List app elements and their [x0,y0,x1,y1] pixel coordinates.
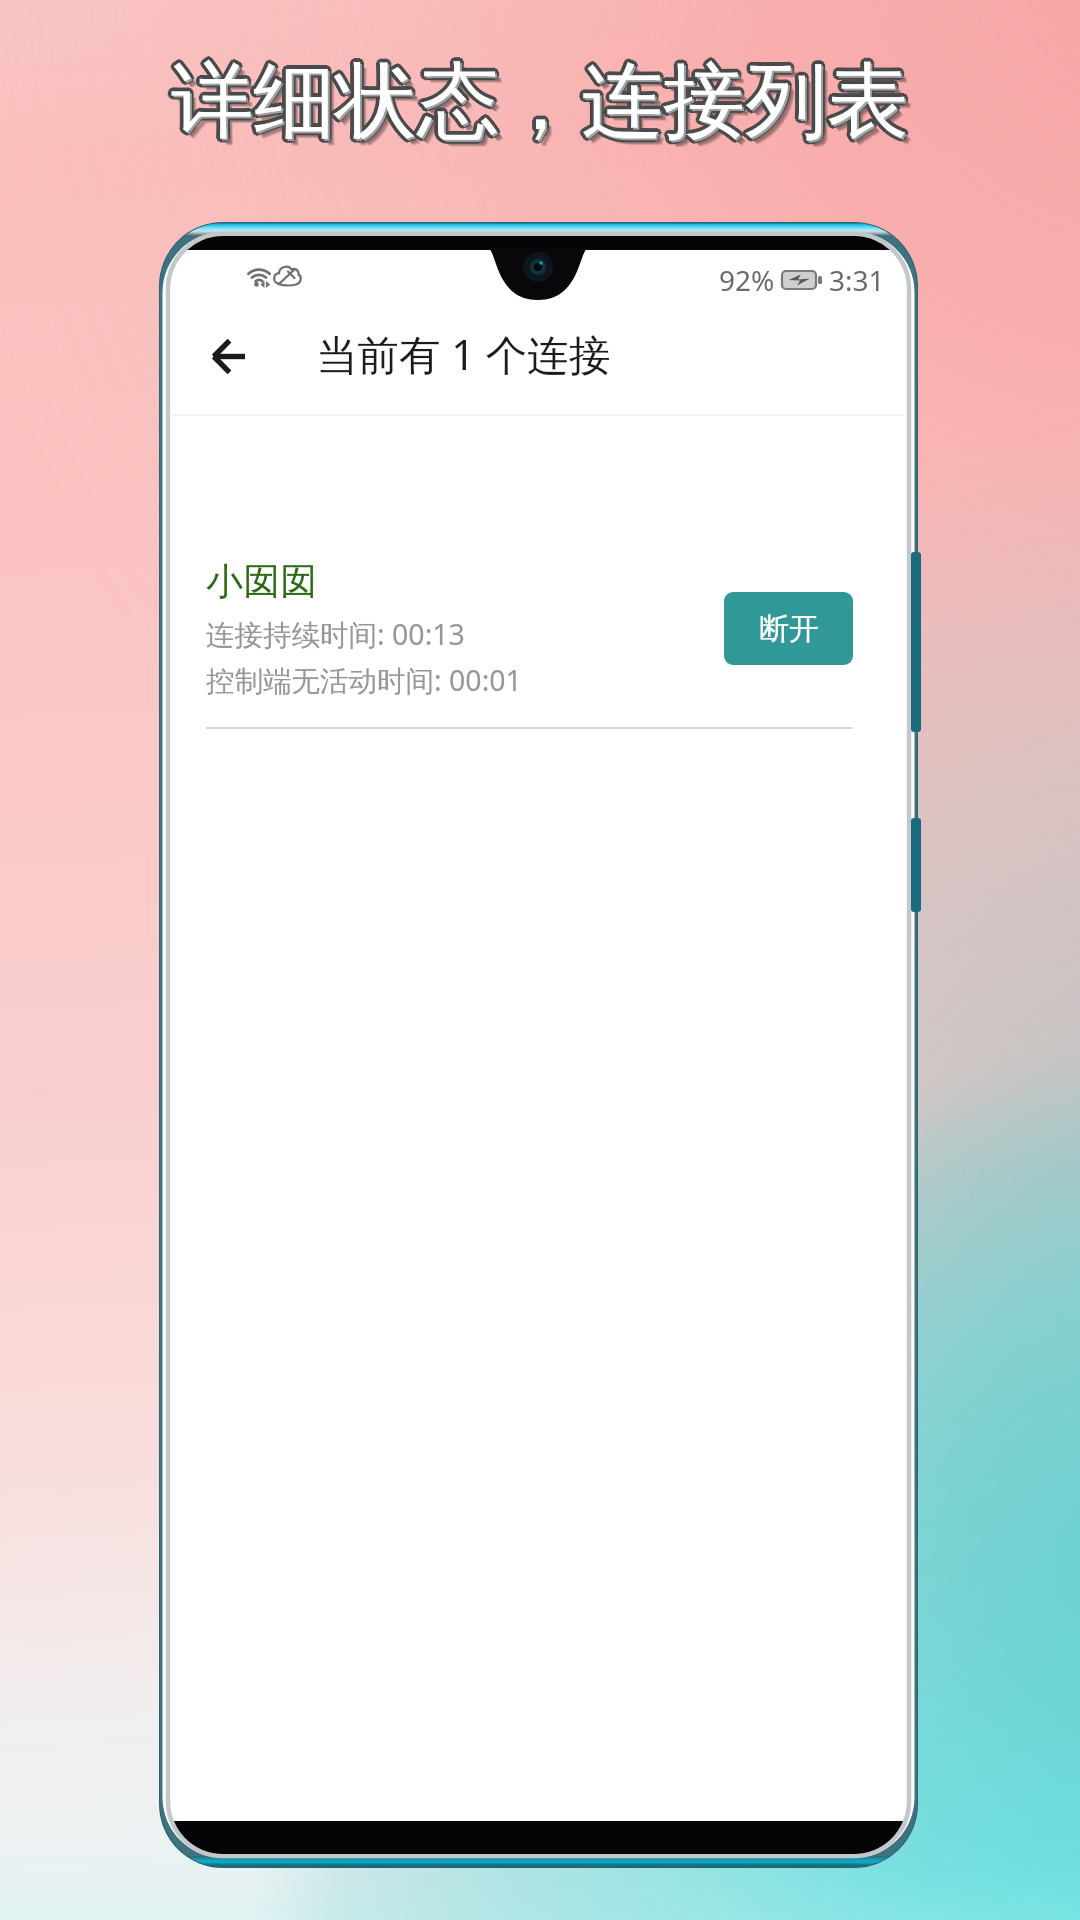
staticText: 详细状态，连接列表 [173,48,911,151]
staticText: 详细状态，连接列表 [174,51,912,154]
staticText: 详细状态，连接列表 [168,50,906,153]
staticText: 详细状态，连接列表 [174,49,912,152]
staticText: 详细状态，连接列表 [169,48,907,151]
staticText: 详细状态，连接列表 [171,50,909,153]
button[interactable]: 断开 [724,592,853,665]
staticText: 小囡囡 [206,558,317,605]
staticText: 控制端无活动时间: 00:01 [206,661,522,700]
staticText: 详细状态，连接列表 [174,52,912,155]
staticText: 详细状态，连接列表 [172,53,910,156]
staticText: 详细状态，连接列表 [172,47,910,150]
button[interactable]: 小囡囡 [173,558,903,728]
staticText: 详细状态，连接列表 [177,56,915,159]
staticText: 详细状态，连接列表 [171,53,909,156]
staticText: 详细状态，连接列表 [168,51,906,154]
staticText: 详细状态，连接列表 [169,47,907,150]
staticText: 详细状态，连接列表 [178,57,916,160]
staticText: 当前有 1 个连接 [316,326,611,383]
staticText: 详细状态，连接列表 [175,50,913,153]
staticText: 详细状态，连接列表 [173,52,911,155]
staticText: 详细状态，连接列表 [171,46,909,149]
staticText: 连接持续时间: 00:13 [206,615,465,654]
staticText: 92% [719,261,775,299]
staticText: 详细状态，连接列表 [168,52,906,155]
staticText: 详细状态，连接列表 [173,52,911,155]
staticText: 详细状态，连接列表 [169,52,907,155]
staticText: 3:31 [829,261,885,299]
staticText: 详细状态，连接列表 [173,53,911,156]
staticText: 详细状态，连接列表 [170,47,908,150]
staticText: 详细状态，连接列表 [167,50,905,153]
staticText: 详细状态，连接列表 [174,53,912,156]
staticText: 详细状态，连接列表 [176,55,914,158]
staticText: 详细状态，连接列表 [173,52,911,155]
staticText: 详细状态，连接列表 [174,50,912,153]
button[interactable]: Back [198,325,258,385]
staticText: 详细状态，连接列表 [173,52,911,155]
staticText: 详细状态，连接列表 [174,48,912,151]
staticText: 断开 [759,610,819,648]
staticText: 详细状态，连接列表 [168,48,906,151]
staticText: 详细状态，连接列表 [168,49,906,152]
staticText: 详细状态，连接列表 [177,56,915,159]
staticText: 详细状态，连接列表 [170,53,908,156]
staticText: 详细状态，连接列表 [171,54,909,157]
staticText: 详细状态，连接列表 [173,47,911,150]
staticText: 详细状态，连接列表 [169,53,907,156]
staticText: 详细状态，连接列表 [171,47,909,150]
staticText: 详细状态，连接列表 [175,54,913,157]
